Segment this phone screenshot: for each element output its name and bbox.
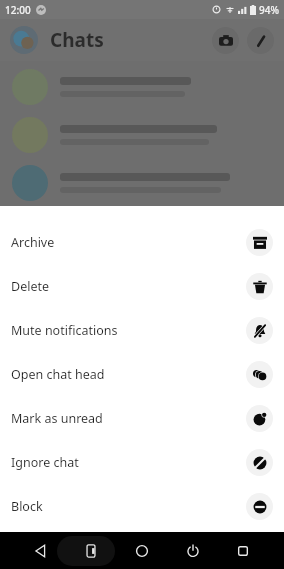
- button[interactable]: Mark as unread: [0, 396, 284, 440]
- button[interactable]: Open chat head: [0, 352, 284, 396]
- button[interactable]: Recents: [223, 534, 263, 568]
- button[interactable]: Screenshot: [71, 534, 111, 568]
- staticText: 94%: [259, 3, 279, 17]
- staticText: Mute notifications: [11, 322, 118, 339]
- button[interactable]: Camera: [212, 27, 239, 54]
- staticText: Ignore chat: [11, 454, 79, 471]
- button[interactable]: Home: [122, 534, 162, 568]
- staticText: Chats: [50, 27, 104, 53]
- staticText: Delete: [11, 278, 50, 295]
- button[interactable]: Back: [21, 534, 61, 568]
- button[interactable]: New message: [247, 27, 274, 54]
- button[interactable]: Archive: [0, 220, 284, 264]
- staticText: 12:00: [5, 3, 31, 17]
- button[interactable]: Power: [173, 534, 213, 568]
- staticText: Open chat head: [11, 366, 105, 383]
- button[interactable]: Mute notifications: [0, 308, 284, 352]
- staticText: Archive: [11, 234, 55, 251]
- staticText: Block: [11, 498, 43, 515]
- staticText: Mark as unread: [11, 410, 103, 427]
- button[interactable]: Ignore chat: [0, 440, 284, 484]
- button[interactable]: Delete: [0, 264, 284, 308]
- button[interactable]: Block: [0, 484, 284, 528]
